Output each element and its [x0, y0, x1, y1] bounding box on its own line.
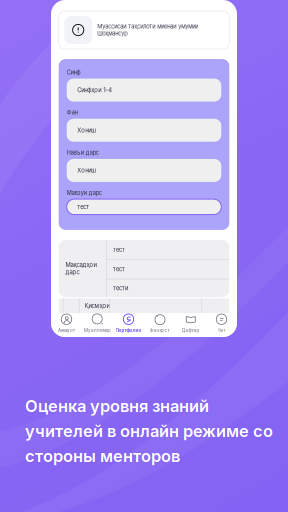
- staticText: Мақсадҳои дарс: [65, 261, 96, 276]
- button[interactable]: Портфолио: [113, 313, 144, 338]
- staticText: Фан: [67, 109, 78, 116]
- button[interactable]: тест: [67, 199, 221, 215]
- staticText: Қисмҳои: [84, 302, 109, 309]
- staticText: Портфолио: [115, 328, 141, 333]
- staticText: Фанҳост: [149, 328, 169, 333]
- staticText: стороны менторов: [25, 446, 180, 466]
- staticText: Навъи дарс: [67, 149, 99, 156]
- button[interactable]: Дафтар: [175, 313, 206, 338]
- staticText: Дафтар: [181, 328, 199, 333]
- staticText: Мавзуи дарс: [67, 189, 102, 196]
- staticText: тести: [113, 284, 128, 292]
- staticText: учителей в онлайн режиме со: [25, 421, 273, 441]
- staticText: Хониш: [77, 127, 96, 134]
- staticText: Синф: [67, 69, 81, 76]
- staticText: Оценка уровня знаний: [25, 396, 209, 416]
- button[interactable]: Хониш: [67, 159, 221, 182]
- button[interactable]: Чат: [206, 313, 237, 338]
- staticText: Аккаунт: [58, 328, 75, 333]
- staticText: Хониш: [77, 167, 96, 174]
- staticText: Чат: [217, 328, 225, 333]
- button[interactable]: Фанҳост: [144, 313, 175, 338]
- button[interactable]: Хониш: [67, 119, 221, 142]
- button[interactable]: Аккаунт: [51, 313, 82, 338]
- staticText: тест: [113, 266, 125, 273]
- staticText: тест: [77, 203, 89, 210]
- staticText: Синфҳои 1–4: [77, 86, 112, 94]
- button[interactable]: Муаллимҳо: [82, 313, 113, 338]
- staticText: Муассисаи таҳсилоти миёнаи умумии Шоҳман…: [97, 23, 198, 37]
- button[interactable]: Синфҳои 1–4: [67, 79, 221, 102]
- staticText: тест: [113, 246, 125, 253]
- staticText: Муаллимҳо: [84, 328, 111, 333]
